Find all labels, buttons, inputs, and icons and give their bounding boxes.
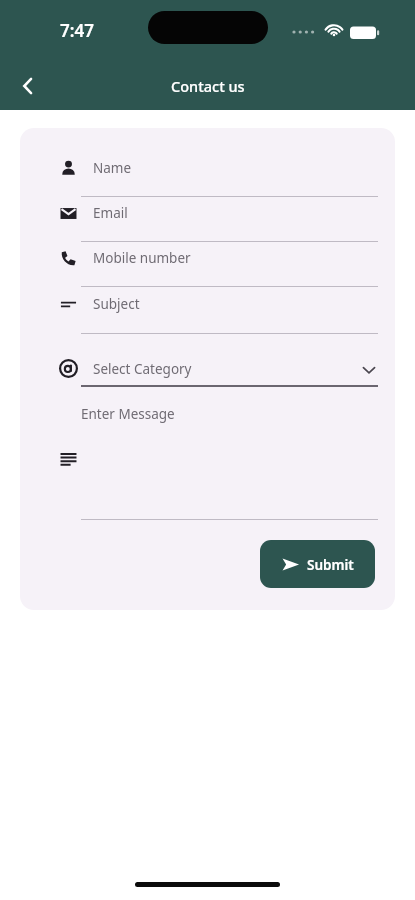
staticText: Name	[93, 159, 132, 177]
other: Subject	[58, 294, 79, 315]
other: Mobile number	[58, 248, 79, 269]
button[interactable]: Mobile number	[32, 238, 384, 296]
other: Category	[58, 358, 79, 379]
other: Email	[58, 203, 79, 224]
staticText: Select Category	[93, 360, 192, 378]
staticText: Enter Message	[81, 405, 175, 423]
staticText: Subject	[93, 295, 140, 313]
staticText: Mobile number	[93, 249, 191, 267]
button[interactable]: Back	[6, 64, 50, 108]
other: Message	[58, 449, 79, 470]
button[interactable]: Email	[32, 193, 384, 251]
staticText: Submit	[307, 556, 354, 574]
button[interactable]: Submit	[260, 540, 375, 588]
staticText: 7:47	[60, 19, 94, 42]
button[interactable]: Subject	[32, 284, 384, 343]
other: Open category list	[361, 362, 377, 378]
staticText: Contact us	[171, 76, 245, 96]
button[interactable]: Name	[32, 148, 384, 206]
other: Name	[58, 158, 79, 179]
button[interactable]: Category	[32, 350, 384, 392]
staticText: Email	[93, 204, 128, 222]
